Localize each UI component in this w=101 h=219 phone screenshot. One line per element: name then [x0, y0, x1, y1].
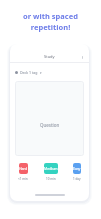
staticText: 1 day — [73, 177, 81, 181]
staticText: Medium — [44, 166, 58, 171]
staticText: Easy — [73, 166, 81, 171]
staticText: or with spaced repetition! — [0, 11, 101, 32]
staticText: Question — [40, 122, 60, 128]
button[interactable]: Study — [10, 44, 89, 62]
staticText: ▾ — [40, 71, 42, 74]
staticText: <1 min — [18, 177, 28, 181]
staticText: 10 min — [46, 177, 56, 181]
button[interactable]: More options — [80, 55, 85, 60]
staticText: Study — [44, 54, 55, 59]
staticText: Hard — [19, 166, 28, 171]
button[interactable]: Hard — [19, 163, 28, 174]
button[interactable]: Question — [15, 81, 84, 156]
button[interactable]: Easy — [73, 163, 81, 174]
button[interactable]: Medium — [44, 163, 58, 174]
staticText: Deck 1 tag — [20, 70, 38, 75]
